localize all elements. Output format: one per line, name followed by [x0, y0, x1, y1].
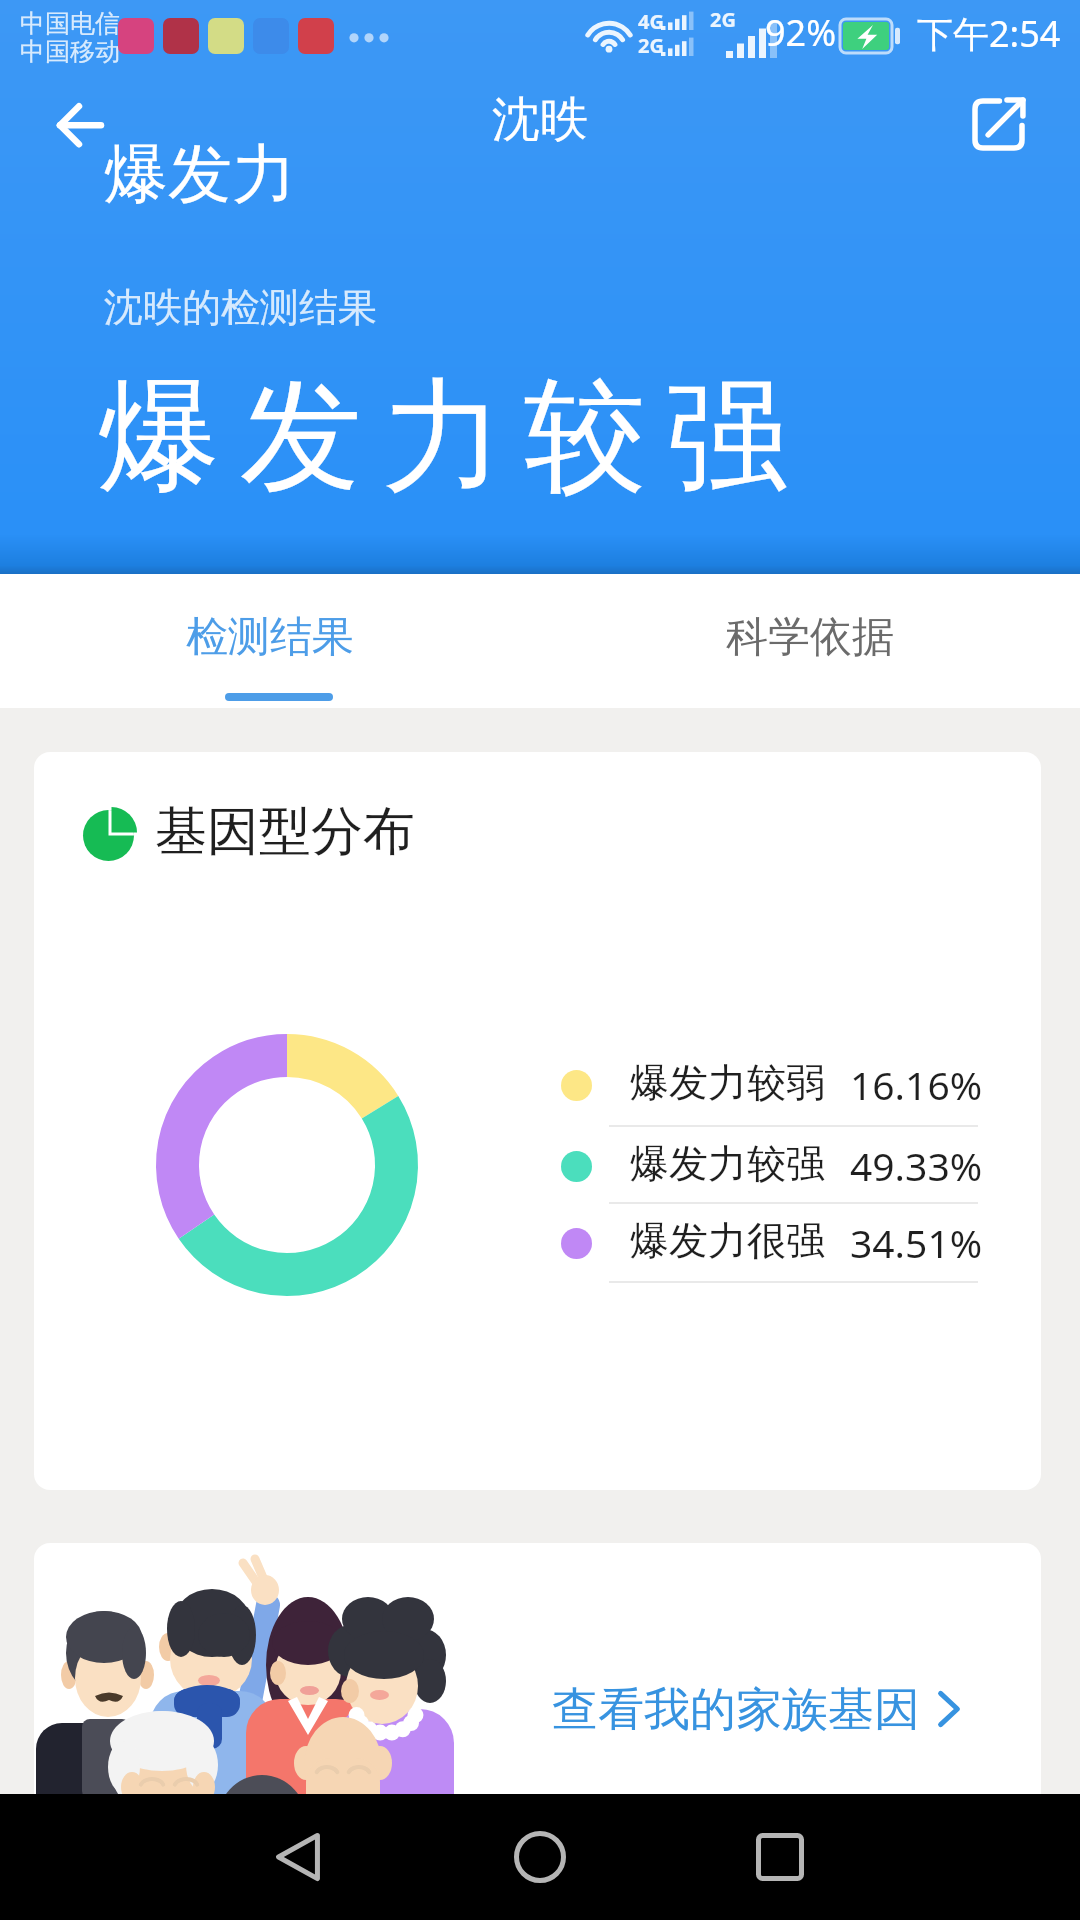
staticText: 下午2:54 [917, 9, 1061, 58]
staticText: 中国电信 [20, 8, 120, 39]
staticText: 科学依据 [726, 611, 894, 664]
staticText: 查看我的家族基因 [552, 1681, 920, 1739]
staticText: 2G [638, 32, 664, 59]
staticText: 中国移动 [20, 36, 120, 67]
staticText: 检测结果 [186, 611, 354, 664]
button[interactable]: 科学依据 [540, 574, 1080, 708]
button[interactable]: Back [36, 86, 122, 166]
staticText: 4G [638, 8, 664, 35]
staticText: 爆发力很强 [630, 1216, 825, 1265]
staticText: 沈昳的检测结果 [104, 283, 377, 332]
button[interactable]: 查看我的家族基因 [34, 1543, 1041, 1833]
staticText: 92% [765, 8, 837, 57]
button[interactable]: Recent apps [740, 1817, 820, 1897]
button[interactable]: Home [500, 1817, 580, 1897]
staticText: 16.16% [850, 1058, 983, 1111]
staticText: 爆发力 [104, 134, 296, 215]
staticText: 2G [710, 6, 736, 33]
staticText: 49.33% [850, 1139, 983, 1192]
button[interactable]: Back [258, 1817, 338, 1897]
button[interactable]: Share [960, 86, 1040, 166]
staticText: 爆发力较强 [630, 1139, 825, 1188]
staticText: 爆发力较弱 [630, 1058, 825, 1107]
staticText: 爆发力较强 [88, 361, 798, 515]
staticText: 基因型分布 [155, 799, 415, 865]
staticText: 沈昳 [0, 90, 1080, 150]
staticText: 34.51% [850, 1216, 983, 1269]
button[interactable]: 检测结果 [0, 574, 540, 708]
